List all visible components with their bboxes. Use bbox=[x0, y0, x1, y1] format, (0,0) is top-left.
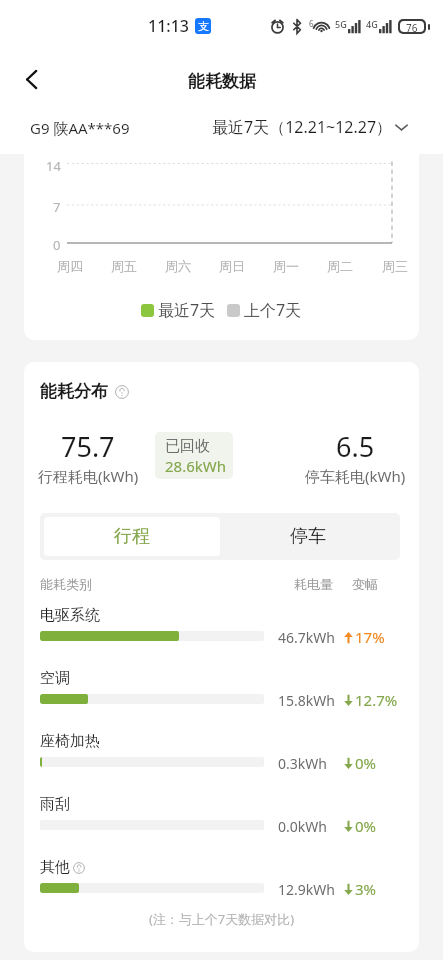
staticText: 3% bbox=[355, 879, 377, 899]
staticText: 17% bbox=[355, 627, 385, 647]
staticText: 最近7天（12.21~12.27） bbox=[212, 116, 393, 138]
staticText: 75.7 bbox=[61, 428, 115, 465]
staticText: 空调 bbox=[40, 669, 70, 688]
staticText: 能耗数据 bbox=[188, 71, 256, 92]
staticText: 停车耗电(kWh) bbox=[305, 466, 406, 486]
staticText: 0% bbox=[355, 816, 377, 836]
staticText: 行程耗电(kWh) bbox=[38, 466, 139, 486]
staticText: 行程 bbox=[114, 525, 150, 548]
staticText: 周日 bbox=[219, 258, 245, 274]
staticText: 周三 bbox=[382, 258, 408, 274]
staticText: 周六 bbox=[165, 258, 191, 274]
button[interactable]: Back bbox=[13, 61, 49, 97]
staticText: 12.9kWh bbox=[278, 880, 335, 899]
staticText: 6 bbox=[309, 18, 314, 29]
staticText: 其他 bbox=[40, 858, 70, 877]
button[interactable]: 停车 bbox=[220, 517, 396, 556]
staticText: (注：与上个7天数据对比) bbox=[24, 910, 419, 928]
staticText: 0 bbox=[53, 236, 61, 254]
staticText: 电驱系统 bbox=[40, 606, 100, 625]
staticText: 停车 bbox=[290, 525, 326, 548]
staticText: 变幅 bbox=[352, 576, 378, 592]
staticText: 周二 bbox=[327, 258, 353, 274]
staticText: 0% bbox=[355, 753, 377, 773]
staticText: 雨刮 bbox=[40, 795, 70, 814]
staticText: 周五 bbox=[111, 258, 137, 274]
staticText: 最近7天 bbox=[158, 299, 216, 321]
staticText: 耗电量 bbox=[294, 576, 333, 592]
staticText: 上个7天 bbox=[244, 299, 302, 321]
staticText: 0.3kWh bbox=[278, 754, 327, 773]
button[interactable]: 行程 bbox=[44, 517, 220, 556]
staticText: 15.8kWh bbox=[278, 691, 335, 710]
staticText: 11:13 bbox=[148, 15, 189, 37]
staticText: 76 bbox=[406, 21, 418, 32]
staticText: 7 bbox=[53, 198, 61, 216]
staticText: 周四 bbox=[57, 258, 83, 274]
staticText: 46.7kWh bbox=[278, 628, 335, 647]
staticText: 4G bbox=[366, 18, 378, 30]
staticText: 能耗类别 bbox=[40, 576, 92, 592]
staticText: 能耗分布 bbox=[40, 381, 108, 402]
staticText: 5G bbox=[335, 18, 347, 30]
staticText: 0.0kWh bbox=[278, 817, 327, 836]
staticText: 14 bbox=[46, 157, 61, 175]
staticText: 28.6kWh bbox=[165, 456, 226, 476]
staticText: 6.5 bbox=[336, 428, 375, 465]
staticText: 12.7% bbox=[355, 690, 398, 710]
staticText: 座椅加热 bbox=[40, 732, 100, 751]
button[interactable]: 最近7天（12.21~12.27） bbox=[208, 110, 412, 144]
staticText: 已回收 bbox=[165, 437, 210, 456]
staticText: G9 陕AA***69 bbox=[30, 118, 130, 138]
staticText: 支 bbox=[198, 19, 209, 33]
staticText: 周一 bbox=[273, 258, 299, 274]
